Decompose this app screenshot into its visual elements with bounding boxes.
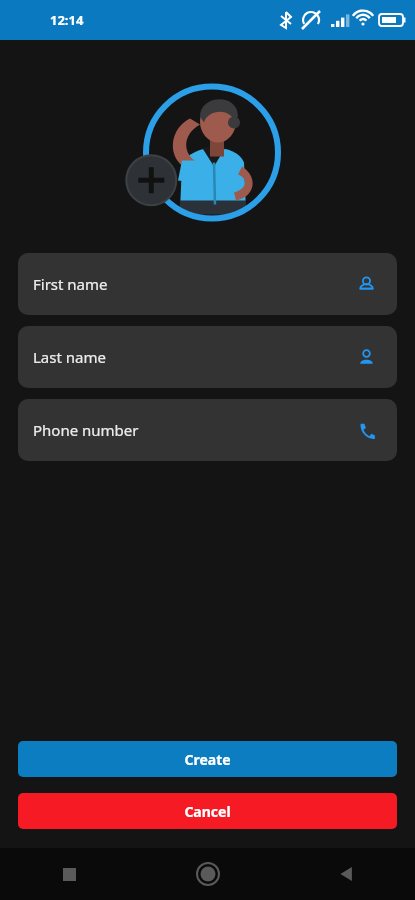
button[interactable]: Phone number xyxy=(18,399,397,461)
staticText: Cancel xyxy=(184,802,231,821)
button[interactable]: Create xyxy=(18,741,397,777)
button[interactable]: First name xyxy=(18,253,397,315)
button[interactable]: Last name xyxy=(18,326,397,388)
button[interactable]: Add photo xyxy=(128,80,288,225)
button[interactable]: Recents xyxy=(0,848,139,900)
staticText: First name xyxy=(33,274,356,294)
button[interactable]: Back xyxy=(277,848,415,900)
button[interactable]: Cancel xyxy=(18,793,397,829)
staticText: Create xyxy=(184,750,231,769)
staticText: Last name xyxy=(33,347,356,367)
button[interactable]: Home xyxy=(139,848,277,900)
staticText: 12:14 xyxy=(50,11,84,29)
staticText: Phone number xyxy=(33,420,356,440)
